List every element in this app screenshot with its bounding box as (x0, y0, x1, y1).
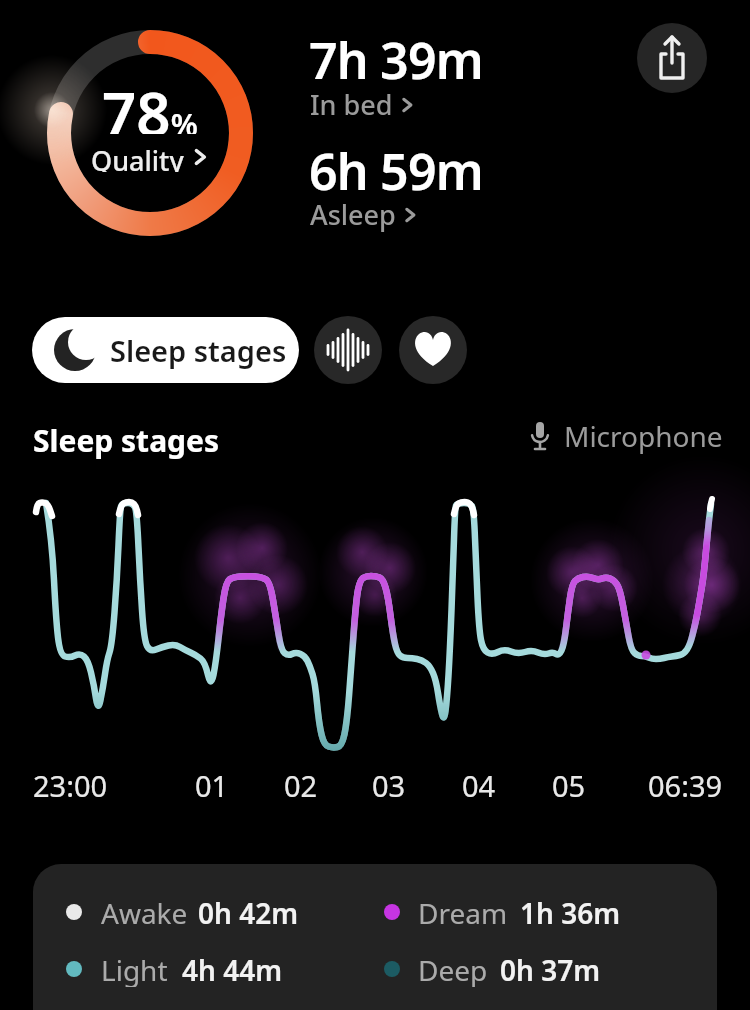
staticText: Sleep stages (33, 420, 220, 461)
staticText: 02 (284, 766, 318, 805)
staticText: 04 (462, 766, 496, 805)
staticText: Microphone (564, 417, 723, 455)
staticText: 06:39 (648, 766, 723, 805)
staticText: 78% (102, 72, 198, 134)
staticText: Sleep stages (110, 331, 287, 370)
staticText: 05 (552, 766, 586, 805)
button[interactable] (314, 316, 382, 384)
button[interactable]: In bed (310, 86, 416, 123)
button[interactable] (637, 23, 707, 93)
staticText: In bed (310, 86, 393, 123)
staticText: 7h 39m (309, 26, 483, 94)
staticText: 0h 37m (500, 951, 601, 987)
staticText: Light (101, 951, 168, 987)
staticText: 01 (195, 766, 229, 805)
staticText: 23:00 (33, 766, 108, 805)
staticText: Awake (101, 894, 188, 930)
button[interactable]: Microphone (527, 417, 723, 455)
staticText: 1h 36m (520, 894, 621, 930)
staticText: Deep (418, 951, 488, 987)
staticText: 4h 44m (182, 951, 283, 987)
staticText: Dream (418, 894, 508, 930)
button[interactable]: Sleep stages (32, 317, 299, 383)
staticText: 03 (372, 766, 406, 805)
staticText: Asleep (310, 196, 396, 233)
button[interactable]: Quality (40, 142, 260, 172)
staticText: Quality (91, 142, 184, 172)
button[interactable]: Asleep (310, 196, 419, 233)
staticText: 0h 42m (198, 894, 299, 930)
staticText: 6h 59m (309, 137, 483, 205)
button[interactable] (399, 316, 467, 384)
